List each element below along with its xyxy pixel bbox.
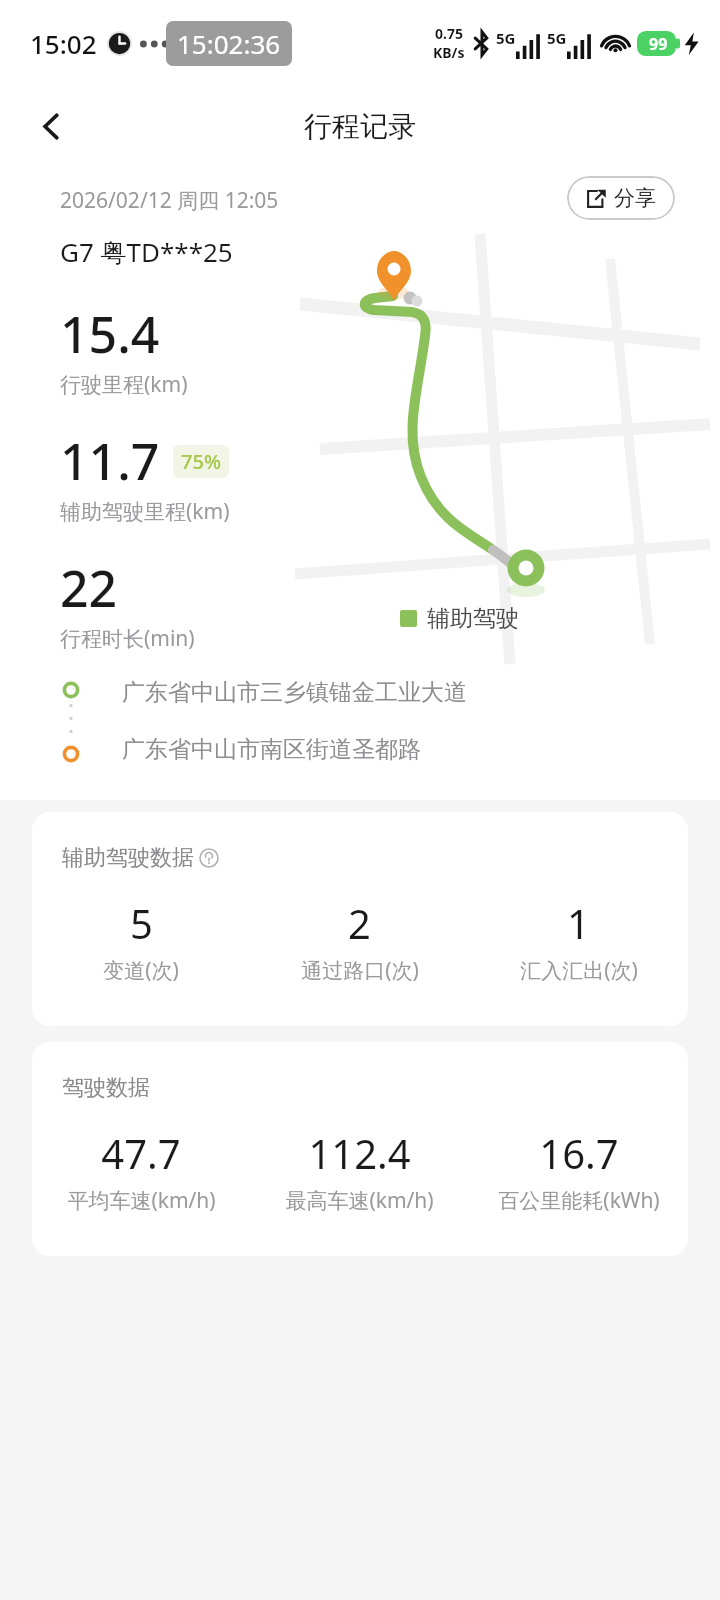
- staticText: 47.7: [101, 1126, 181, 1180]
- staticText: 平均车速(km/h): [67, 1186, 216, 1215]
- staticText: 辅助驾驶: [427, 604, 519, 633]
- button[interactable]: 驾驶数据: [32, 1042, 688, 1256]
- staticText: 0.75: [435, 24, 463, 43]
- staticText: 99: [649, 33, 668, 55]
- staticText: 广东省中山市三乡镇锚金工业大道: [122, 678, 467, 707]
- staticText: 辅助驾驶数据: [62, 844, 194, 872]
- staticText: KB/s: [433, 43, 465, 62]
- staticText: 2026/02/12 周四 12:05: [60, 186, 279, 215]
- staticText: 行程时长(min): [60, 624, 195, 653]
- button[interactable]: Back: [22, 97, 80, 155]
- staticText: 2: [348, 896, 371, 950]
- staticText: 辅助驾驶里程(km): [60, 497, 230, 526]
- staticText: 5G: [496, 28, 516, 48]
- staticText: 15:02: [30, 26, 97, 61]
- staticText: 百公里能耗(kWh): [498, 1186, 660, 1215]
- staticText: 15:02:36: [177, 26, 281, 61]
- staticText: 通过路口(次): [301, 956, 419, 985]
- staticText: 11.7: [60, 427, 160, 495]
- staticText: 15.4: [60, 300, 160, 368]
- staticText: 5G: [547, 28, 567, 48]
- staticText: 驾驶数据: [62, 1074, 150, 1102]
- staticText: 广东省中山市南区街道圣都路: [122, 735, 421, 764]
- button[interactable]: 辅助驾驶数据: [32, 812, 688, 1026]
- staticText: G7 粤TD***25: [60, 234, 233, 270]
- staticText: 75%: [181, 448, 221, 475]
- button[interactable]: 分享: [567, 176, 675, 220]
- staticText: 最高车速(km/h): [285, 1186, 434, 1215]
- staticText: 行程记录: [304, 109, 416, 144]
- staticText: 变道(次): [103, 956, 179, 985]
- staticText: 22: [60, 554, 118, 622]
- staticText: 1: [567, 896, 590, 950]
- staticText: 112.4: [308, 1126, 411, 1180]
- staticText: 5: [130, 896, 153, 950]
- staticText: 分享: [614, 185, 656, 211]
- staticText: 行驶里程(km): [60, 370, 188, 399]
- staticText: 16.7: [539, 1126, 619, 1180]
- staticText: 汇入汇出(次): [520, 956, 638, 985]
